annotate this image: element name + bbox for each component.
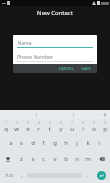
button[interactable]: z bbox=[16, 151, 27, 167]
staticText: 4 bbox=[38, 121, 40, 125]
button[interactable]: 1 bbox=[0, 119, 11, 135]
button[interactable] bbox=[74, 110, 110, 119]
button[interactable]: g bbox=[49, 135, 60, 151]
staticText: g bbox=[53, 139, 57, 147]
staticText: k bbox=[86, 139, 90, 147]
staticText: . bbox=[86, 172, 88, 179]
staticText: x bbox=[31, 155, 35, 163]
button[interactable]: j bbox=[71, 135, 82, 151]
button[interactable]: Shift bbox=[0, 151, 16, 167]
button[interactable]: d bbox=[27, 135, 38, 151]
staticText: 9 bbox=[93, 121, 95, 125]
staticText: s bbox=[20, 139, 23, 147]
button[interactable]: 9 bbox=[88, 119, 99, 135]
button[interactable]: Enter bbox=[92, 167, 110, 183]
staticText: u bbox=[70, 125, 74, 133]
staticText: t bbox=[48, 125, 51, 133]
button[interactable]: k bbox=[82, 135, 93, 151]
staticText: 1 bbox=[5, 121, 7, 125]
staticText: i bbox=[82, 125, 84, 133]
button[interactable]: x bbox=[27, 151, 38, 167]
button[interactable]: 3 bbox=[22, 119, 33, 135]
staticText: 5 bbox=[49, 121, 51, 125]
button[interactable]: 0 bbox=[99, 119, 110, 135]
staticText: h bbox=[64, 139, 68, 147]
staticText: c bbox=[42, 155, 45, 163]
button[interactable]: l bbox=[93, 135, 104, 151]
button[interactable]: 2 bbox=[11, 119, 22, 135]
button[interactable]: s bbox=[16, 135, 27, 151]
button[interactable]: Voice input bbox=[102, 112, 108, 118]
staticText: Phone Number bbox=[17, 54, 53, 61]
staticText: CANCEL bbox=[58, 66, 74, 71]
button[interactable]: 7 bbox=[66, 119, 77, 135]
button[interactable]: ?123 bbox=[0, 167, 17, 183]
button[interactable]: 4 bbox=[33, 119, 44, 135]
button[interactable]: c bbox=[38, 151, 49, 167]
staticText: q bbox=[4, 125, 8, 133]
staticText: p bbox=[103, 125, 107, 133]
button[interactable]: Phone Number bbox=[17, 53, 93, 62]
button[interactable]: 8 bbox=[77, 119, 88, 135]
button[interactable]: SAVE bbox=[79, 65, 93, 72]
staticText: SAVE bbox=[81, 66, 91, 71]
staticText: l bbox=[98, 139, 100, 147]
button[interactable]: v bbox=[49, 151, 60, 167]
staticText: 8 bbox=[82, 121, 84, 125]
staticText: 3 bbox=[27, 121, 29, 125]
button[interactable]: 6 bbox=[55, 119, 66, 135]
staticText: f bbox=[42, 139, 45, 147]
staticText: z bbox=[20, 155, 23, 163]
staticText: w bbox=[14, 125, 19, 133]
staticText: 0 bbox=[104, 121, 106, 125]
staticText: a bbox=[9, 139, 13, 147]
staticText: n bbox=[75, 155, 79, 163]
staticText: b bbox=[64, 155, 68, 163]
button[interactable]: n bbox=[71, 151, 82, 167]
button[interactable]: CANCEL bbox=[56, 65, 76, 72]
button[interactable]: a bbox=[5, 135, 16, 151]
staticText: 2 bbox=[16, 121, 18, 125]
staticText: e bbox=[26, 125, 30, 133]
button[interactable]: Backspace bbox=[93, 151, 110, 167]
staticText: v bbox=[53, 155, 57, 163]
staticText: o bbox=[92, 125, 96, 133]
staticText: d bbox=[31, 139, 35, 147]
button[interactable]: h bbox=[60, 135, 71, 151]
staticText: r bbox=[37, 125, 40, 133]
button[interactable]: f bbox=[38, 135, 49, 151]
staticText: y bbox=[59, 125, 63, 133]
button[interactable]: m bbox=[82, 151, 93, 167]
staticText: m bbox=[85, 155, 91, 163]
staticText: New Contact bbox=[37, 9, 73, 17]
button[interactable]: Space bbox=[27, 170, 82, 180]
staticText: 7 bbox=[71, 121, 73, 125]
button[interactable]: Name bbox=[17, 39, 93, 48]
button[interactable]: b bbox=[60, 151, 71, 167]
button[interactable]: 5 bbox=[44, 119, 55, 135]
staticText: 6 bbox=[60, 121, 62, 125]
button[interactable]: , bbox=[17, 167, 27, 183]
staticText: Name bbox=[17, 40, 32, 47]
staticText: j bbox=[76, 139, 78, 147]
staticText: , bbox=[21, 172, 23, 179]
staticText: ?123 bbox=[5, 173, 13, 178]
